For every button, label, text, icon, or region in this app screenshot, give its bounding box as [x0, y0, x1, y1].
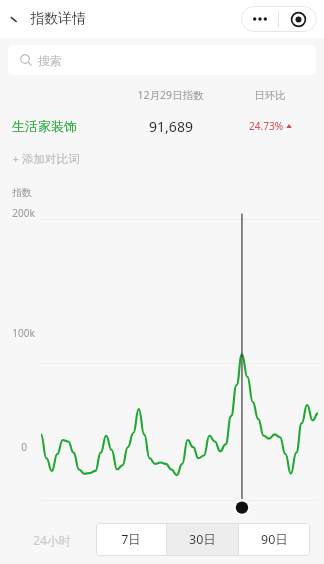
staticText: 01-05 [270, 545, 295, 558]
staticText: 0 [21, 440, 27, 454]
staticText: 90日 [261, 531, 288, 548]
staticText: 12-07 [54, 545, 79, 558]
staticText: 搜索 [38, 53, 62, 68]
staticText: 30日 [189, 531, 216, 548]
staticText: + 添加对比词 [12, 151, 80, 167]
staticText: 12-17 [126, 545, 151, 558]
staticText: 7日 [121, 531, 141, 548]
staticText: 日环比 [254, 89, 286, 102]
button[interactable]: More [241, 6, 278, 32]
button[interactable]: Close [279, 6, 317, 32]
button[interactable]: + 添加对比词 [0, 144, 324, 174]
staticText: 100k [12, 326, 35, 340]
staticText: 生活家装饰 [12, 118, 77, 134]
staticText: 24小时 [33, 532, 71, 548]
staticText: 200k [12, 206, 35, 220]
button[interactable]: 搜索 [8, 45, 316, 75]
staticText: 指数 [12, 186, 32, 199]
staticText: 指数详情 [30, 10, 86, 28]
button[interactable]: 30日 [167, 523, 238, 556]
staticText: 12-27 [198, 545, 223, 558]
button[interactable]: 24小时 [14, 525, 90, 555]
button[interactable]: 生活家装饰 [0, 108, 324, 144]
staticText: 24.73% [249, 119, 283, 133]
staticText: 12月29日指数 [137, 88, 204, 102]
staticText: 91,689 [149, 117, 193, 136]
button[interactable]: Back [2, 6, 28, 32]
button[interactable]: 7日 [96, 523, 166, 556]
button[interactable]: 90日 [239, 523, 310, 556]
